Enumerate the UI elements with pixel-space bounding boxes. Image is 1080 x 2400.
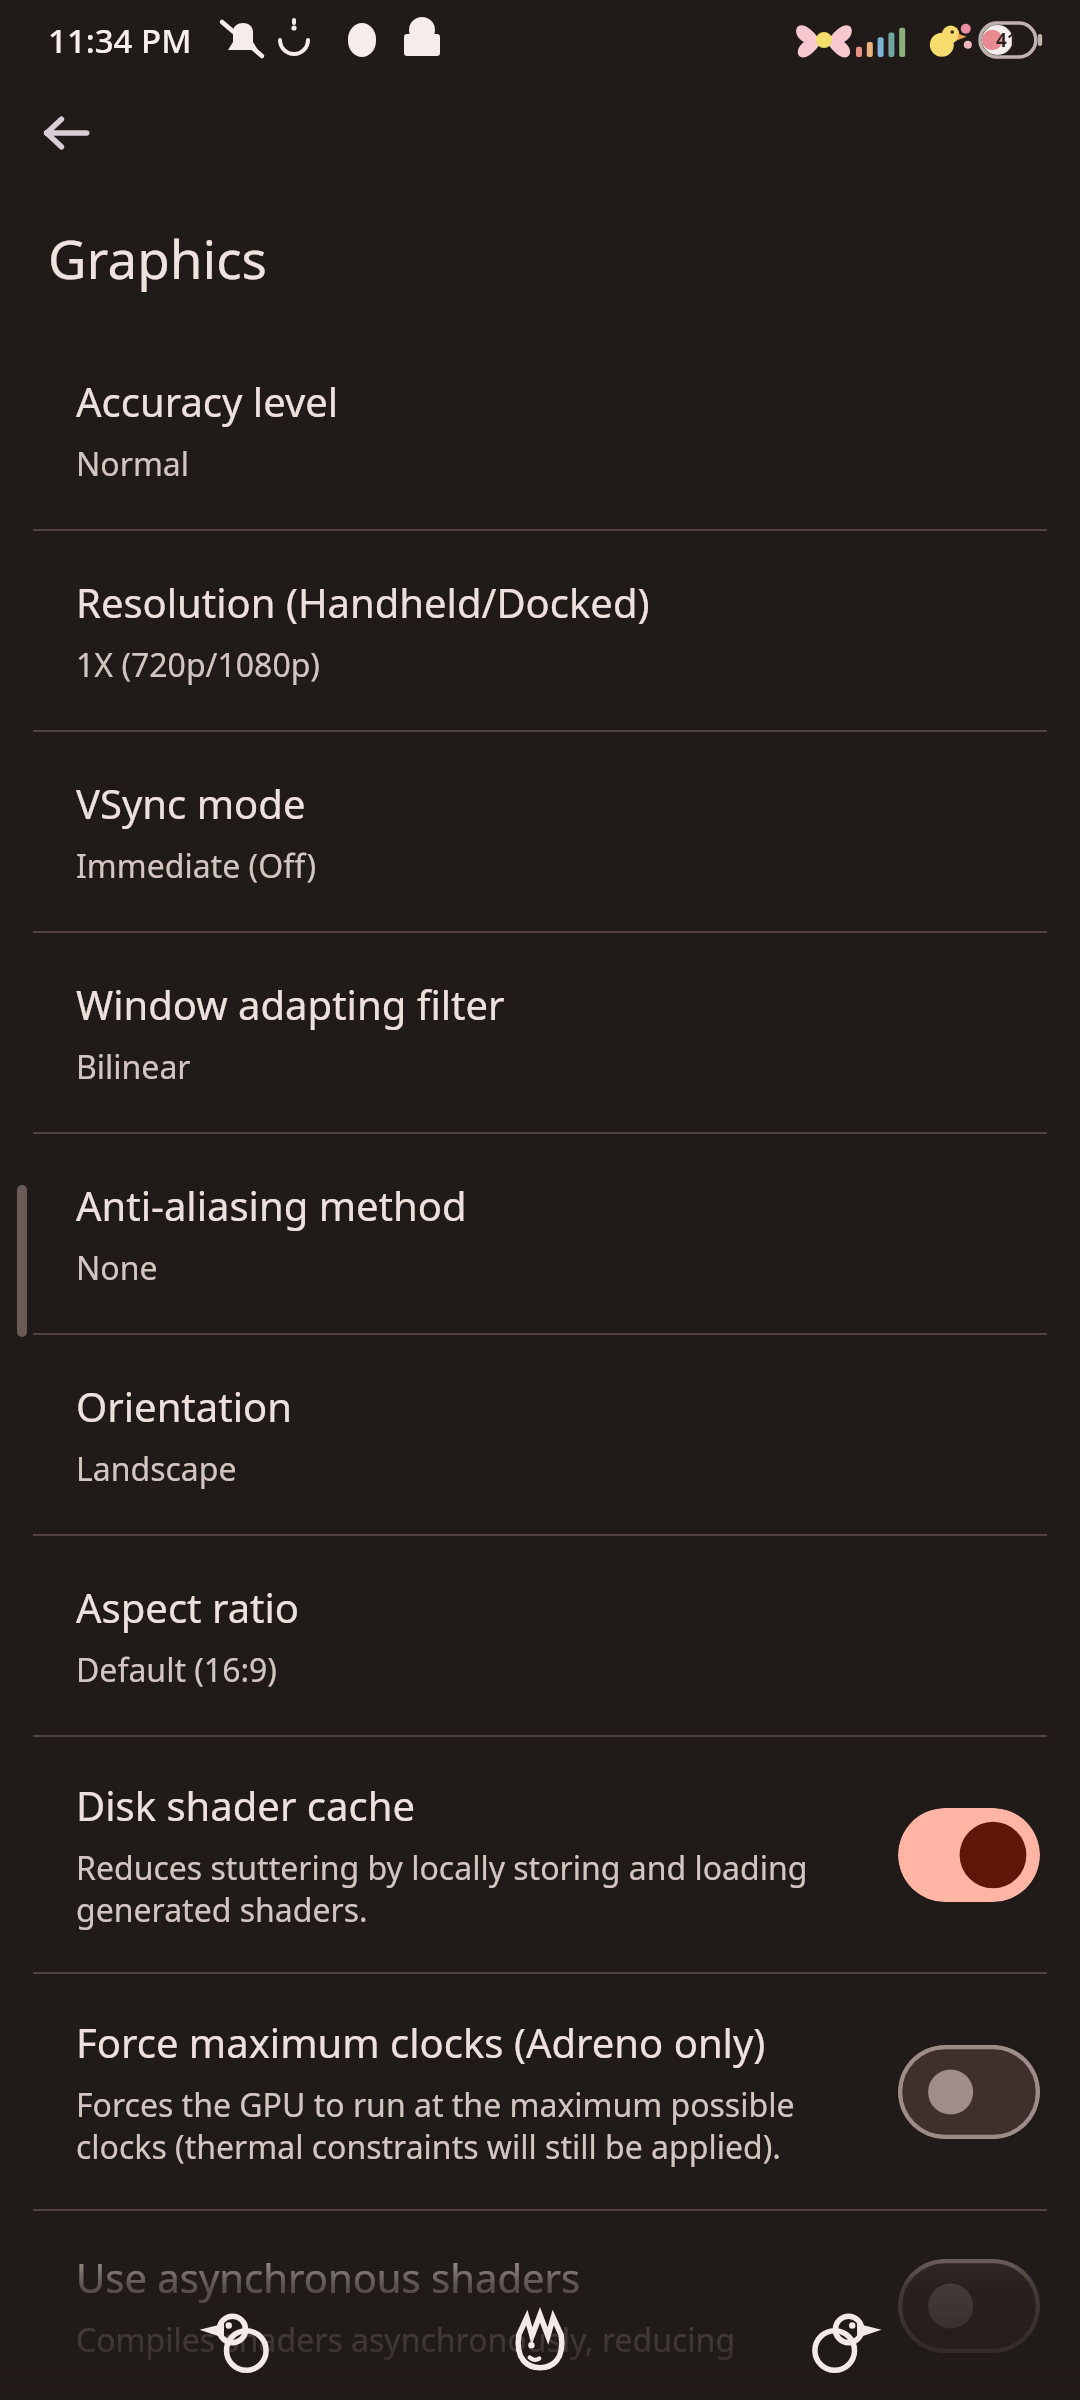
button[interactable]: VSync mode xyxy=(0,732,1080,931)
button[interactable]: Recent apps xyxy=(783,2285,893,2395)
staticText: 1X (720p/1080p) xyxy=(76,643,320,687)
button[interactable]: Home xyxy=(485,2285,595,2395)
button[interactable]: Use asynchronous shaders xyxy=(0,2211,1080,2400)
button[interactable]: Window adapting filter xyxy=(0,933,1080,1132)
staticText: Reduces stuttering by locally storing an… xyxy=(76,1846,880,1931)
staticText: VSync mode xyxy=(76,776,306,830)
button[interactable]: Back xyxy=(188,2285,298,2395)
staticText: Aspect ratio xyxy=(76,1580,300,1634)
staticText: 41 xyxy=(996,27,1018,53)
staticText: Force maximum clocks (Adreno only) xyxy=(76,2015,766,2069)
button[interactable]: Aspect ratio xyxy=(0,1536,1080,1735)
staticText: Forces the GPU to run at the maximum pos… xyxy=(76,2083,880,2168)
staticText: Landscape xyxy=(76,1447,237,1491)
staticText: Disk shader cache xyxy=(76,1778,415,1832)
button[interactable]: Toggle off xyxy=(898,2259,1040,2353)
staticText: Graphics xyxy=(48,222,267,294)
staticText: 11:34 PM xyxy=(48,18,192,63)
button[interactable]: Back xyxy=(24,91,108,175)
staticText: None xyxy=(76,1246,158,1290)
staticText: Accuracy level xyxy=(76,374,339,428)
staticText: Orientation xyxy=(76,1379,292,1433)
staticText: Compiles shaders asynchronously, reducin… xyxy=(76,2318,736,2362)
staticText: Use asynchronous shaders xyxy=(76,2250,581,2304)
staticText: Anti-aliasing method xyxy=(76,1178,467,1232)
staticText: Immediate (Off) xyxy=(76,844,317,888)
staticText: Normal xyxy=(76,442,190,486)
button[interactable]: Toggle off xyxy=(898,2045,1040,2139)
staticText: Bilinear xyxy=(76,1045,191,1089)
button[interactable]: Disk shader cache xyxy=(0,1737,1080,1972)
button[interactable]: Force maximum clocks (Adreno only) xyxy=(0,1974,1080,2209)
button[interactable]: Orientation xyxy=(0,1335,1080,1534)
staticText: Window adapting filter xyxy=(76,977,505,1031)
staticText: Resolution (Handheld/Docked) xyxy=(76,575,650,629)
button[interactable]: Toggle on xyxy=(898,1808,1040,1902)
staticText: Default (16:9) xyxy=(76,1648,277,1692)
button[interactable]: Accuracy level xyxy=(0,330,1080,529)
button[interactable]: Resolution (Handheld/Docked) xyxy=(0,531,1080,730)
button[interactable]: Anti-aliasing method xyxy=(0,1134,1080,1333)
